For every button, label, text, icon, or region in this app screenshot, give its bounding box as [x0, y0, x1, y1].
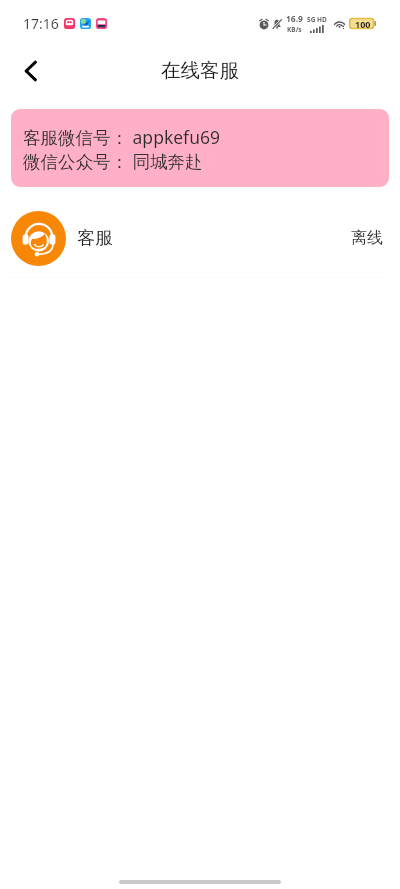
- button[interactable]: 客服微信号： appkefu69: [11, 109, 389, 187]
- staticText: 离线: [351, 228, 383, 248]
- button[interactable]: Back: [8, 49, 52, 93]
- staticText: 5G HD: [307, 15, 327, 24]
- staticText: 16.9: [286, 13, 303, 25]
- staticText: 客服微信号： appkefu69: [23, 125, 220, 149]
- staticText: 客服: [77, 227, 113, 250]
- staticText: 17:16: [23, 14, 59, 33]
- staticText: KB/s: [287, 25, 302, 34]
- staticText: 微信公众号： 同城奔赴: [23, 149, 203, 173]
- staticText: 在线客服: [161, 58, 239, 83]
- button[interactable]: 客服: [0, 206, 400, 270]
- staticText: 100: [355, 18, 371, 30]
